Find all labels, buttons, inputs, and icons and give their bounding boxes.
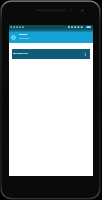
staticText: Delivery (19, 33, 28, 36)
staticText: username (19, 37, 30, 40)
button[interactable]: DELIVERY LIST (12, 49, 90, 59)
staticText: DELIVERY LIST (13, 52, 28, 55)
other: Account (11, 35, 16, 40)
button[interactable]: Account (9, 32, 93, 43)
